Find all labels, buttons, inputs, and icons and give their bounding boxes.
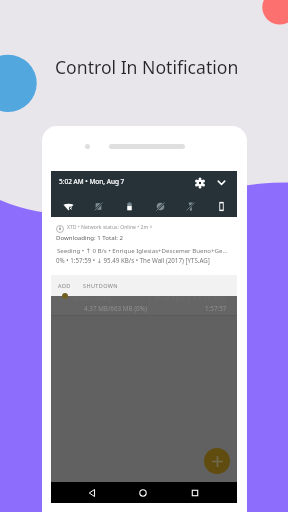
- staticText: 5:02 AM • Mon, Aug 7: [59, 177, 125, 186]
- staticText: Downloading: [73, 294, 112, 302]
- staticText: SHUTDOWN: [83, 282, 118, 289]
- button[interactable]: Settings: [191, 174, 208, 191]
- button[interactable]: Recents: [169, 482, 221, 503]
- button[interactable]: Wi-Fi: [61, 199, 75, 213]
- staticText: 0% • 1:57:59 • ↓ 95.49 KB/s • The Wall (…: [56, 256, 242, 264]
- staticText: 1:57:57: [205, 304, 227, 313]
- staticText: Control In Notification: [55, 55, 239, 79]
- button[interactable]: SHUTDOWN: [79, 275, 122, 296]
- staticText: XTD • Network status: Online • 2m ^: [67, 224, 153, 231]
- button[interactable]: Home: [117, 482, 169, 503]
- button[interactable]: Mobile data: [91, 199, 105, 213]
- staticText: Downloading: 1 Total: 2: [56, 233, 123, 241]
- staticText: ADD: [58, 282, 71, 289]
- button[interactable]: Expand quick settings: [213, 174, 230, 191]
- staticText: 4.37 MB/663 MB (0%): [84, 304, 147, 313]
- button[interactable]: Flashlight: [183, 199, 197, 213]
- button[interactable]: Battery saver: [122, 199, 136, 213]
- button[interactable]: Back: [66, 482, 118, 503]
- button[interactable]: Add torrent: [204, 448, 230, 474]
- button[interactable]: Do not disturb: [153, 199, 167, 213]
- staticText: ↓ 95.46 KB/s | ↑ 0.99 KB/s: [147, 294, 227, 303]
- button[interactable]: ADD: [54, 275, 75, 296]
- button[interactable]: Auto-rotate: [214, 199, 228, 213]
- staticText: Seeding • ↑ 0 B/s • Enrique Iglesias+Des…: [57, 246, 243, 254]
